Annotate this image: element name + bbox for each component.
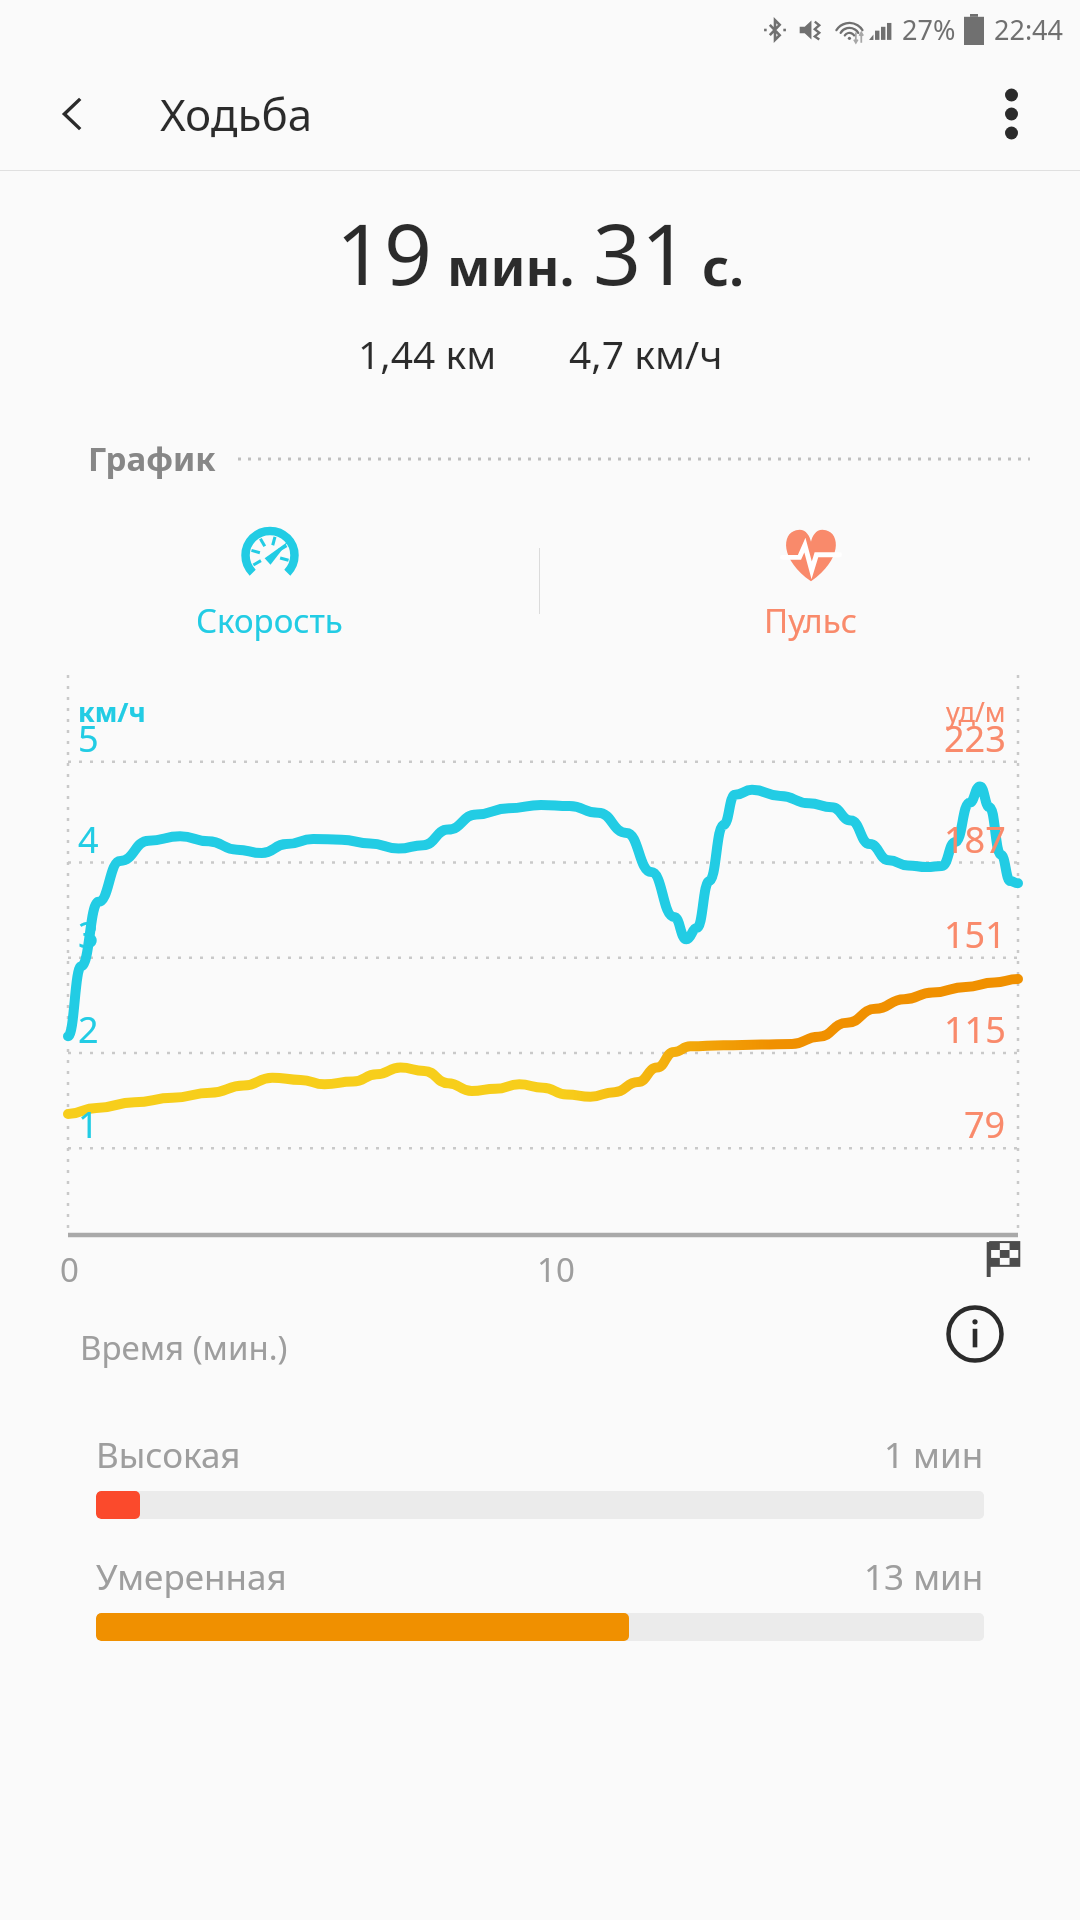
- staticText: Время (мин.): [80, 1325, 288, 1370]
- staticText: 10: [537, 1247, 575, 1292]
- staticText: Пульс: [764, 598, 857, 643]
- staticText: 27%: [902, 11, 956, 48]
- staticText: 79: [964, 1100, 1006, 1149]
- button[interactable]: Ещё: [976, 79, 1046, 149]
- staticText: 22:44: [994, 11, 1064, 48]
- button[interactable]: Пульс: [540, 507, 1080, 655]
- button[interactable]: Назад: [40, 81, 106, 147]
- staticText: 4,7 км/ч: [569, 327, 723, 380]
- staticText: Умеренная: [96, 1553, 287, 1601]
- staticText: Высокая: [96, 1431, 241, 1479]
- staticText: 31: [593, 195, 690, 309]
- staticText: 1: [78, 1100, 99, 1149]
- staticText: Скорость: [196, 598, 343, 643]
- staticText: уд/м: [946, 693, 1006, 730]
- staticText: 115: [944, 1005, 1006, 1054]
- staticText: 223: [944, 714, 1006, 763]
- button[interactable]: Информация: [942, 1301, 1008, 1367]
- staticText: 187: [944, 815, 1006, 864]
- staticText: 19: [336, 195, 433, 309]
- staticText: Ходьба: [160, 84, 313, 144]
- staticText: с.: [702, 230, 744, 301]
- staticText: 13 мин: [864, 1553, 984, 1601]
- staticText: 0: [60, 1247, 79, 1292]
- staticText: 5: [78, 714, 99, 763]
- staticText: 1,44 км: [358, 327, 497, 380]
- staticText: 3: [78, 910, 99, 959]
- button[interactable]: Высокая: [96, 1431, 984, 1519]
- button[interactable]: Скорость: [0, 507, 539, 655]
- staticText: мин.: [447, 230, 575, 301]
- staticText: 4: [78, 815, 99, 864]
- staticText: График: [88, 436, 216, 481]
- staticText: км/ч: [78, 693, 146, 730]
- staticText: 1 мин: [884, 1431, 984, 1479]
- staticText: 2: [78, 1005, 99, 1054]
- staticText: 151: [944, 910, 1006, 959]
- button[interactable]: Умеренная: [96, 1553, 984, 1641]
